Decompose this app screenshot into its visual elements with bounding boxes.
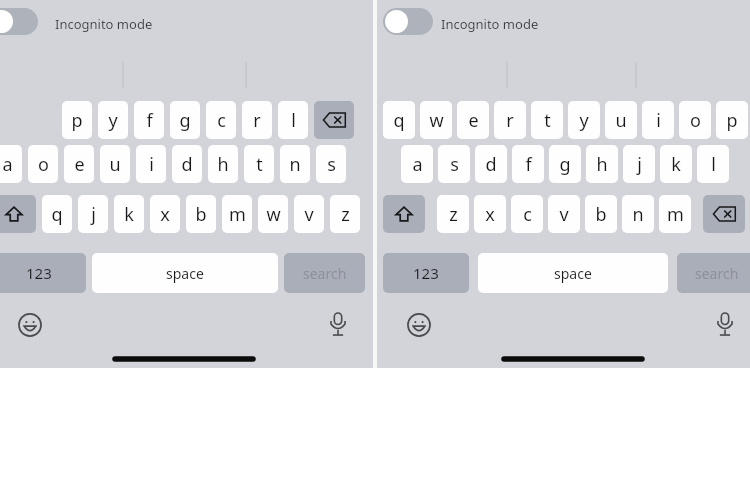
- button[interactable]: p: [62, 101, 92, 139]
- staticText: g: [559, 152, 571, 177]
- button[interactable]: j: [78, 195, 108, 233]
- staticText: z: [449, 202, 458, 227]
- staticText: v: [559, 202, 569, 227]
- button[interactable]: search: [284, 253, 365, 293]
- button[interactable]: l: [278, 101, 308, 139]
- button[interactable]: q: [42, 195, 72, 233]
- button[interactable]: b: [585, 195, 617, 233]
- button[interactable]: 123: [0, 253, 86, 293]
- staticText: a: [2, 152, 13, 177]
- button[interactable]: a: [401, 145, 433, 183]
- button[interactable]: x: [474, 195, 506, 233]
- button[interactable]: o: [28, 145, 58, 183]
- button[interactable]: e: [457, 101, 489, 139]
- button[interactable]: r: [242, 101, 272, 139]
- staticText: d: [181, 152, 193, 177]
- staticText: h: [596, 152, 608, 177]
- staticText: x: [160, 202, 170, 227]
- button[interactable]: z: [330, 195, 360, 233]
- button[interactable]: Voice input: [325, 311, 351, 337]
- button[interactable]: k: [660, 145, 692, 183]
- button[interactable]: c: [511, 195, 543, 233]
- button[interactable]: x: [150, 195, 180, 233]
- staticText: Incognito mode: [441, 15, 539, 33]
- button[interactable]: Backspace: [703, 195, 745, 233]
- button[interactable]: a: [0, 145, 22, 183]
- button[interactable]: Backspace: [314, 101, 354, 139]
- staticText: g: [179, 108, 191, 133]
- staticText: u: [615, 108, 627, 133]
- button[interactable]: z: [437, 195, 469, 233]
- button[interactable]: Incognito mode toggle: [0, 8, 38, 35]
- button[interactable]: h: [586, 145, 618, 183]
- button[interactable]: n: [622, 195, 654, 233]
- button[interactable]: space: [92, 253, 278, 293]
- button[interactable]: c: [206, 101, 236, 139]
- button[interactable]: i: [136, 145, 166, 183]
- staticText: Incognito mode: [55, 15, 153, 33]
- staticText: b: [195, 202, 207, 227]
- staticText: f: [525, 152, 532, 177]
- staticText: s: [327, 152, 336, 177]
- staticText: t: [256, 152, 263, 177]
- button[interactable]: u: [605, 101, 637, 139]
- staticText: t: [544, 108, 551, 133]
- button[interactable]: h: [208, 145, 238, 183]
- button[interactable]: n: [280, 145, 310, 183]
- staticText: e: [74, 152, 85, 177]
- button[interactable]: e: [64, 145, 94, 183]
- button[interactable]: w: [258, 195, 288, 233]
- button[interactable]: space: [478, 253, 668, 293]
- staticText: u: [109, 152, 121, 177]
- button[interactable]: g: [549, 145, 581, 183]
- button[interactable]: u: [100, 145, 130, 183]
- button[interactable]: m: [222, 195, 252, 233]
- button[interactable]: f: [512, 145, 544, 183]
- button[interactable]: j: [623, 145, 655, 183]
- button[interactable]: t: [244, 145, 274, 183]
- button[interactable]: i: [642, 101, 674, 139]
- button[interactable]: f: [134, 101, 164, 139]
- button[interactable]: Voice input: [712, 311, 738, 337]
- staticText: y: [579, 108, 589, 133]
- button[interactable]: l: [697, 145, 729, 183]
- button[interactable]: Emoji: [17, 312, 43, 338]
- button[interactable]: v: [548, 195, 580, 233]
- staticText: k: [671, 152, 681, 177]
- button[interactable]: o: [679, 101, 711, 139]
- button[interactable]: m: [659, 195, 691, 233]
- button[interactable]: w: [420, 101, 452, 139]
- staticText: s: [450, 152, 459, 177]
- staticText: f: [146, 108, 153, 133]
- staticText: search: [695, 264, 739, 283]
- button[interactable]: r: [494, 101, 526, 139]
- button[interactable]: p: [716, 101, 748, 139]
- button[interactable]: k: [114, 195, 144, 233]
- button[interactable]: Incognito mode toggle: [383, 8, 433, 35]
- button[interactable]: t: [531, 101, 563, 139]
- button[interactable]: Emoji: [406, 312, 432, 338]
- button[interactable]: 123: [383, 253, 469, 293]
- button[interactable]: q: [383, 101, 415, 139]
- staticText: z: [341, 202, 350, 227]
- button[interactable]: d: [172, 145, 202, 183]
- staticText: i: [149, 152, 154, 177]
- button[interactable]: y: [568, 101, 600, 139]
- button[interactable]: g: [170, 101, 200, 139]
- button[interactable]: d: [475, 145, 507, 183]
- button[interactable]: y: [98, 101, 128, 139]
- button[interactable]: s: [438, 145, 470, 183]
- button[interactable]: v: [294, 195, 324, 233]
- staticText: p: [726, 108, 738, 133]
- staticText: search: [303, 264, 347, 283]
- button[interactable]: Shift: [0, 195, 36, 233]
- button[interactable]: search: [677, 253, 750, 293]
- staticText: r: [253, 108, 261, 133]
- staticText: j: [91, 202, 96, 227]
- button[interactable]: s: [316, 145, 346, 183]
- staticText: w: [429, 108, 444, 133]
- staticText: c: [523, 202, 532, 227]
- button[interactable]: Shift: [383, 195, 425, 233]
- staticText: j: [637, 152, 642, 177]
- button[interactable]: b: [186, 195, 216, 233]
